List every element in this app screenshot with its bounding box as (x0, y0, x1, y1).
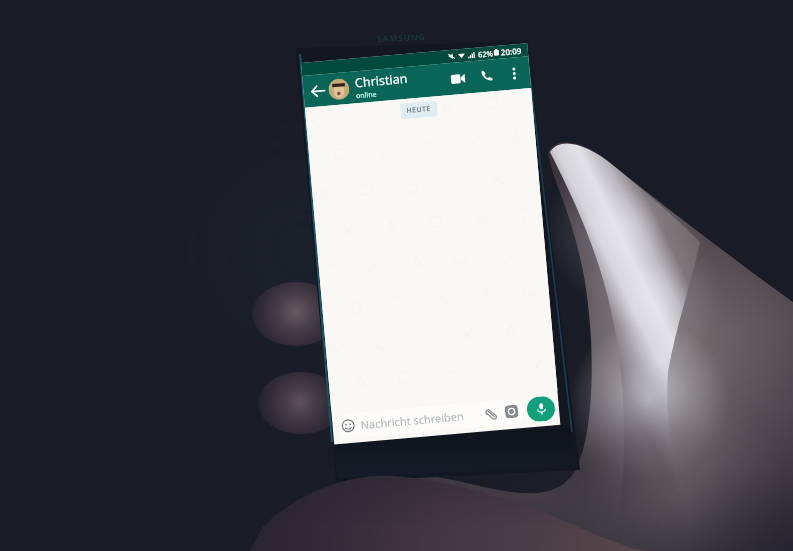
button[interactable]: Video call (447, 68, 469, 89)
staticText: Nachricht schreiben (360, 408, 465, 432)
button[interactable]: Call (476, 65, 498, 87)
button[interactable]: Nachricht schreiben (341, 398, 519, 439)
button[interactable]: Attach file (484, 406, 499, 421)
staticText: 62% (477, 48, 493, 60)
button[interactable]: Contact photo (328, 78, 350, 101)
button[interactable]: Record voice message (526, 395, 556, 423)
button[interactable]: HEUTE (406, 104, 432, 116)
staticText: SAMSUNG (377, 31, 426, 45)
staticText: online (356, 89, 377, 101)
staticText: HEUTE (406, 104, 432, 116)
staticText: Christian (354, 70, 408, 91)
staticText: 20:09 (500, 45, 522, 58)
button[interactable]: More options (505, 65, 522, 82)
button[interactable]: Camera (504, 404, 519, 419)
button[interactable]: Back (307, 80, 328, 101)
